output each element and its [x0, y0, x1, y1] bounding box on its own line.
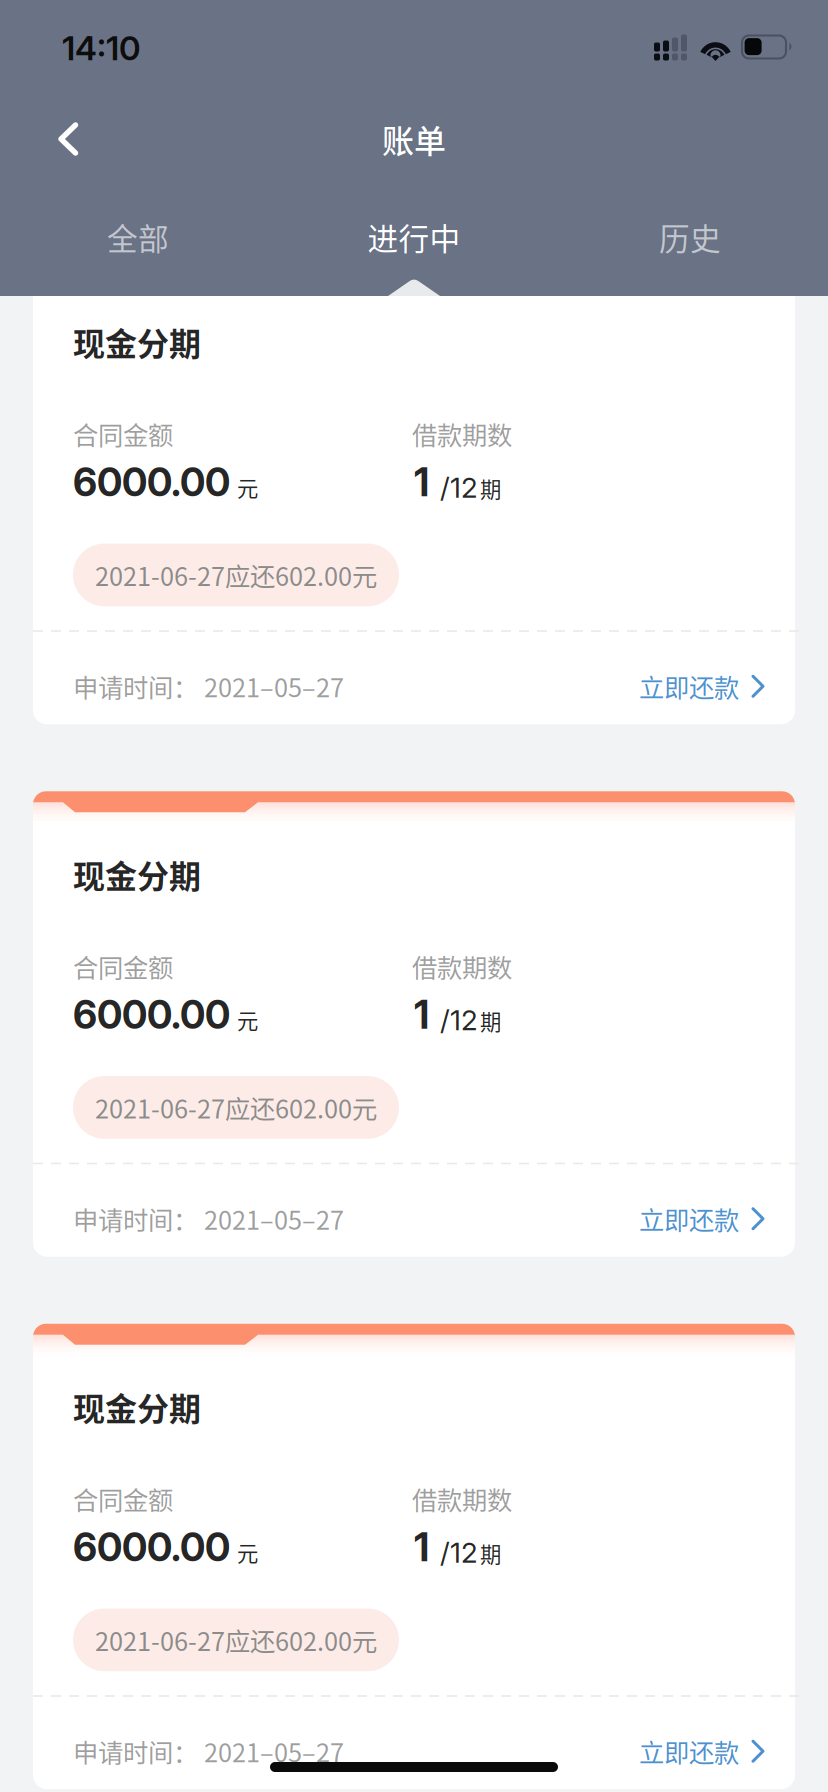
staticText: 现金分期: [73, 319, 201, 365]
staticText: 6000.00: [73, 991, 230, 1038]
button[interactable]: Back: [0, 104, 119, 184]
staticText: 现金分期: [73, 1384, 201, 1430]
button[interactable]: 全部: [0, 189, 276, 285]
staticText: /12: [440, 471, 478, 505]
staticText: /12: [440, 1536, 478, 1569]
button[interactable]: 立即还款: [639, 628, 795, 729]
staticText: 6000.00: [73, 1524, 230, 1570]
staticText: 现金分期: [73, 851, 201, 897]
staticText: 1: [414, 991, 429, 1038]
staticText: 元: [237, 472, 258, 503]
staticText: 1: [414, 459, 429, 506]
staticText: 申请时间： 2021–05–27: [73, 1733, 344, 1770]
staticText: 立即还款: [639, 1733, 739, 1770]
staticText: 全部: [107, 215, 169, 259]
staticText: 进行中: [367, 215, 460, 259]
staticText: 2021-06-27应还602.00元: [95, 1089, 377, 1126]
staticText: 6000.00: [73, 459, 230, 506]
staticText: 合同金额: [73, 415, 173, 452]
staticText: 元: [237, 1004, 258, 1035]
staticText: 1: [414, 1524, 429, 1570]
staticText: 申请时间： 2021–05–27: [73, 1200, 344, 1237]
staticText: 2021-06-27应还602.00元: [95, 557, 377, 593]
staticText: 期: [480, 473, 501, 504]
staticText: 2021-06-27应还602.00元: [95, 1621, 377, 1658]
button[interactable]: 立即还款: [639, 1160, 795, 1261]
button[interactable]: 历史: [552, 189, 828, 285]
staticText: 申请时间： 2021–05–27: [73, 668, 344, 705]
staticText: 借款期数: [412, 948, 512, 985]
button[interactable]: 进行中: [276, 189, 552, 285]
staticText: 借款期数: [412, 415, 512, 452]
staticText: 历史: [659, 215, 721, 259]
staticText: 借款期数: [412, 1480, 512, 1517]
button[interactable]: 立即还款: [639, 1693, 795, 1792]
staticText: 立即还款: [639, 668, 739, 705]
staticText: 期: [480, 1005, 501, 1036]
staticText: 期: [480, 1538, 501, 1568]
staticText: /12: [440, 1003, 478, 1037]
staticText: 14:10: [62, 28, 141, 68]
staticText: 立即还款: [639, 1200, 739, 1237]
staticText: 账单: [382, 116, 446, 162]
staticText: 合同金额: [73, 1480, 173, 1517]
staticText: 合同金额: [73, 948, 173, 985]
staticText: 元: [237, 1537, 258, 1567]
